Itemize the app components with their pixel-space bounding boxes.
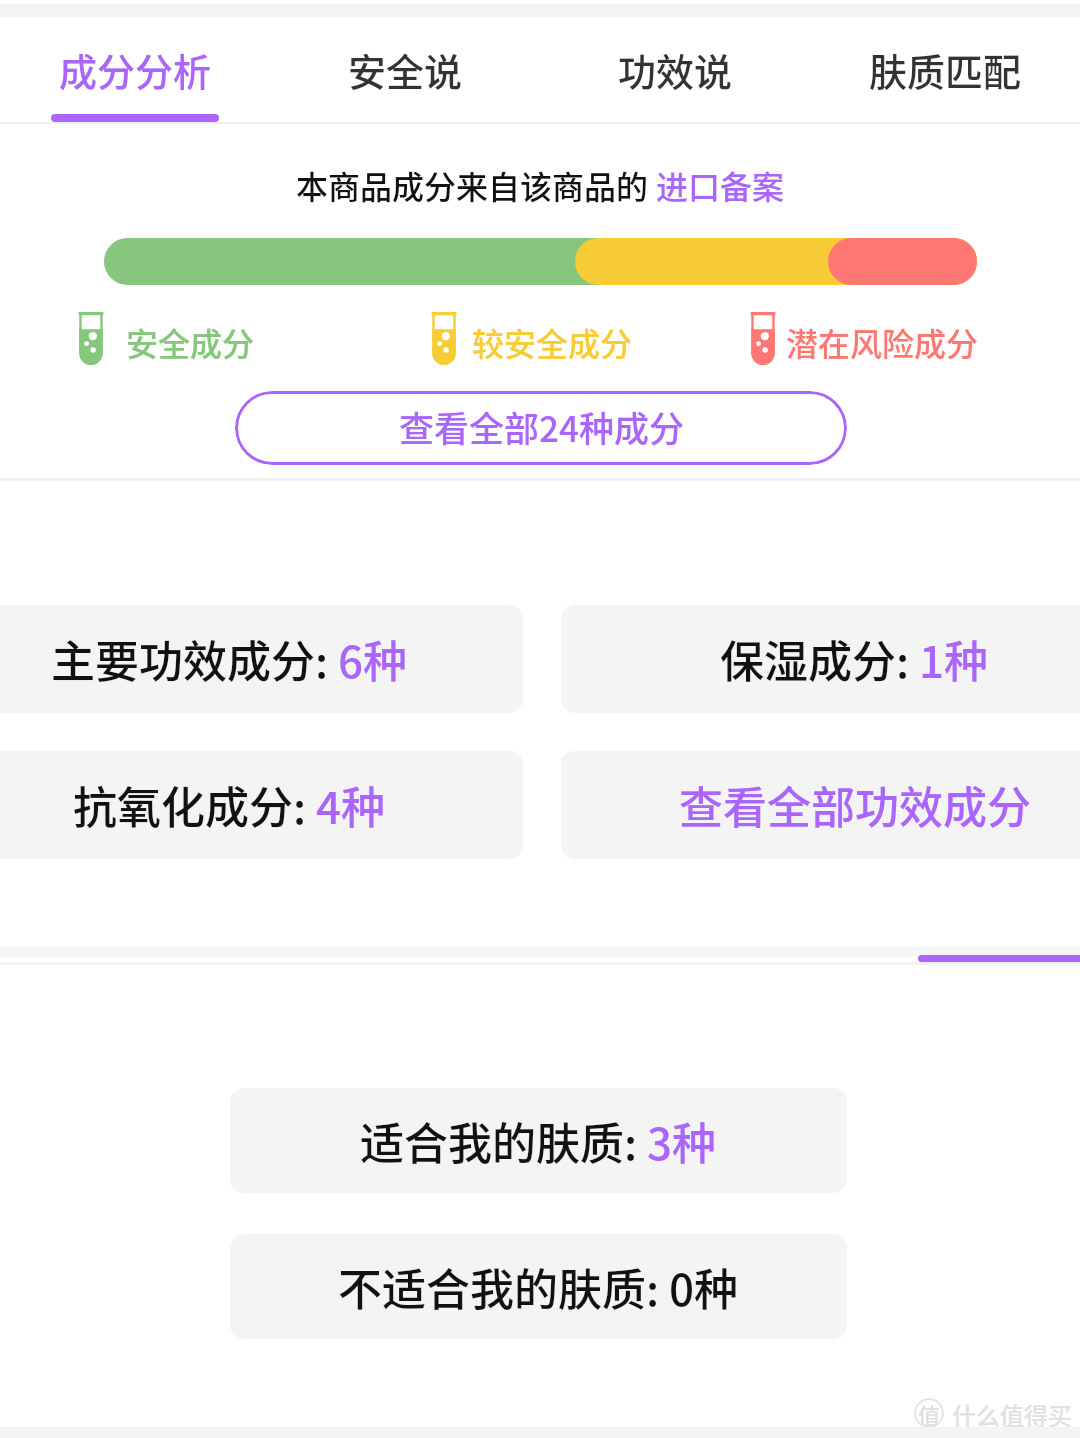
button[interactable]: 抗氧化成分: 4种 xyxy=(0,751,523,859)
button[interactable]: 肤质匹配 xyxy=(810,17,1080,121)
other: 较安全成分 xyxy=(431,312,457,365)
staticText: 查看全部功效成分 xyxy=(679,773,1031,837)
other: 安全成分 xyxy=(78,312,104,365)
staticText: 潜在风险成分 xyxy=(786,319,979,365)
staticText: 安全说 xyxy=(348,42,463,97)
button[interactable]: 查看全部功效成分 xyxy=(561,751,1080,859)
button[interactable]: 不适合我的肤质: 0种 xyxy=(230,1234,847,1339)
button[interactable]: 安全说 xyxy=(270,17,540,121)
staticText: 适合我的肤质: 3种 xyxy=(360,1109,717,1173)
other: 潜在风险成分 xyxy=(750,312,776,365)
button[interactable]: 保湿成分: 1种 xyxy=(561,605,1080,713)
staticText: 较安全成分 xyxy=(472,319,633,365)
button[interactable]: 成分分析 xyxy=(0,17,270,121)
staticText: 保湿成分: 1种 xyxy=(720,627,989,691)
staticText: 抗氧化成分: 4种 xyxy=(73,773,386,837)
staticText: 成分分析 xyxy=(59,42,212,97)
button[interactable]: 进口备案 xyxy=(656,162,785,208)
button[interactable]: 功效说 xyxy=(540,17,810,121)
button[interactable]: 适合我的肤质: 3种 xyxy=(230,1088,847,1193)
staticText: 值 xyxy=(918,1398,941,1428)
button[interactable]: 查看全部24种成分 xyxy=(235,391,847,465)
staticText: 查看全部24种成分 xyxy=(399,401,684,452)
button[interactable]: 主要功效成分: 6种 xyxy=(0,605,523,713)
staticText: 本商品成分来自该商品的 xyxy=(296,162,656,208)
staticText: 什么值得买 xyxy=(952,1397,1072,1432)
staticText: 安全成分 xyxy=(126,319,255,365)
staticText: 主要功效成分: 6种 xyxy=(51,627,408,691)
staticText: 肤质匹配 xyxy=(869,42,1022,97)
staticText: 不适合我的肤质: 0种 xyxy=(338,1255,739,1319)
staticText: 功效说 xyxy=(618,42,733,97)
